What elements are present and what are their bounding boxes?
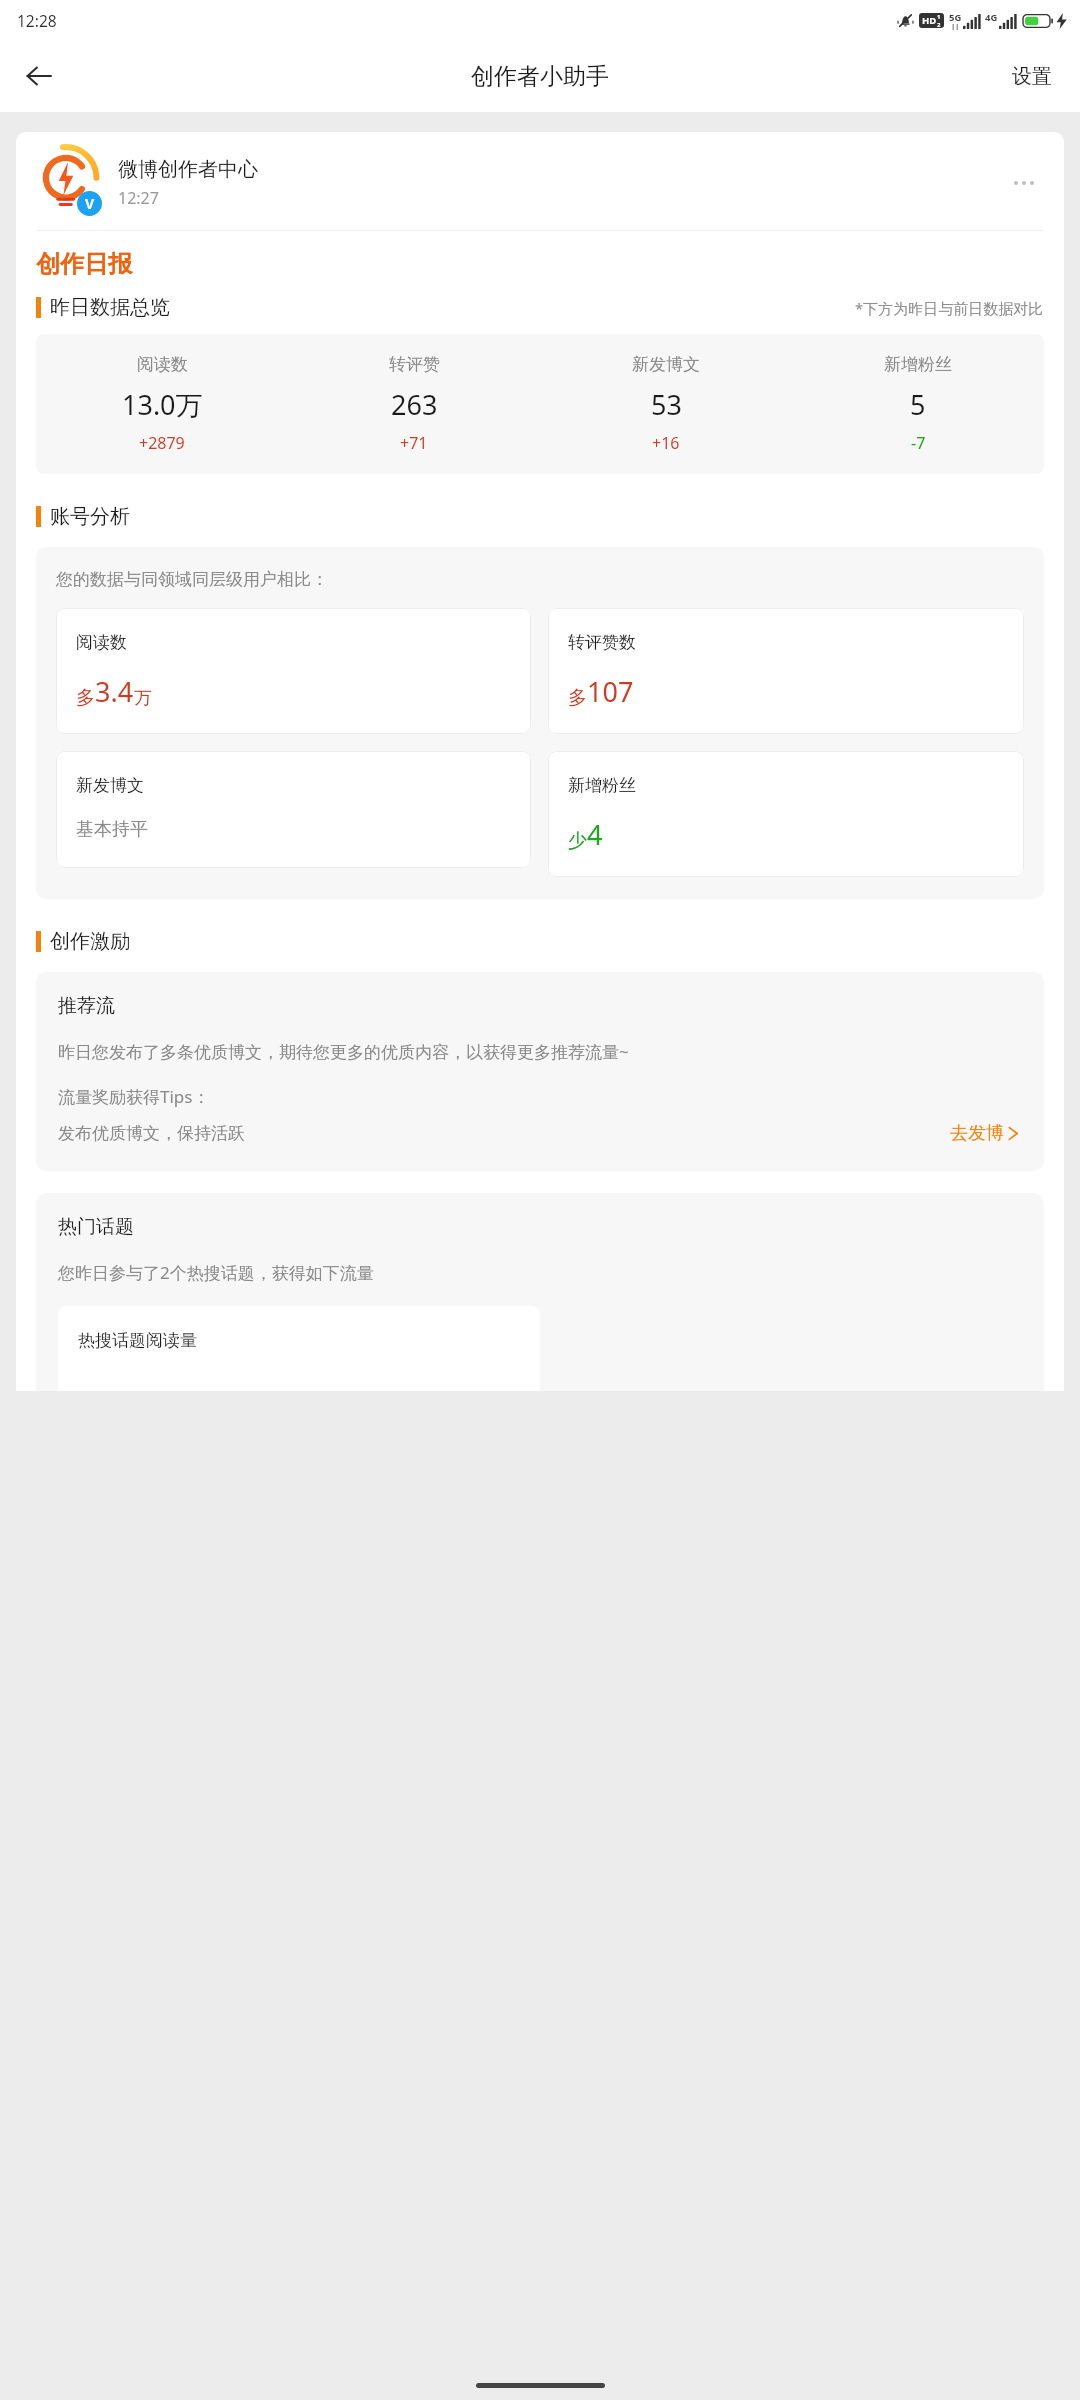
button[interactable]: Back bbox=[10, 47, 68, 105]
staticText: 新发博文 bbox=[76, 775, 144, 796]
staticText: -7 bbox=[911, 432, 926, 454]
staticText: 新增粉丝 bbox=[568, 775, 636, 796]
staticText: 263 bbox=[391, 386, 438, 423]
staticText: 4 bbox=[587, 816, 603, 853]
staticText: 您昨日参与了2个热搜话题，获得如下流量 bbox=[58, 1261, 374, 1284]
staticText: 创作激励 bbox=[50, 929, 130, 954]
staticText: 13.0万 bbox=[122, 386, 203, 423]
button[interactable]: 转评赞数 bbox=[548, 608, 1024, 734]
staticText: 多 bbox=[76, 686, 95, 710]
staticText: 新增粉丝 bbox=[884, 354, 952, 375]
staticText: 热搜话题阅读量 bbox=[78, 1330, 197, 1351]
staticText: 昨日您发布了多条优质博文，期待您更多的优质内容，以获得更多推荐流量~ bbox=[58, 1040, 629, 1063]
staticText: 2 bbox=[937, 21, 941, 28]
staticText: 创作日报 bbox=[36, 249, 132, 279]
staticText: 4G bbox=[985, 11, 998, 24]
staticText: 12:27 bbox=[118, 187, 159, 209]
staticText: 1 bbox=[937, 13, 941, 21]
staticText: 热门话题 bbox=[58, 1215, 134, 1239]
staticText: 微博创作者中心 bbox=[118, 157, 258, 182]
staticText: 53 bbox=[651, 386, 682, 423]
staticText: *下方为昨日与前日数据对比 bbox=[855, 298, 1044, 318]
staticText: 阅读数 bbox=[137, 354, 188, 375]
staticText: 去发博 bbox=[950, 1122, 1004, 1145]
button[interactable]: 阅读数 bbox=[56, 608, 531, 734]
button[interactable]: 新增粉丝 bbox=[548, 751, 1024, 877]
staticText: 阅读数 bbox=[76, 632, 127, 653]
staticText: 您的数据与同领域同层级用户相比： bbox=[56, 569, 328, 590]
staticText: +71 bbox=[400, 432, 428, 454]
staticText: 转评赞 bbox=[389, 354, 440, 375]
staticText: HD bbox=[922, 14, 937, 27]
staticText: 设置 bbox=[1012, 64, 1052, 89]
staticText: 基本持平 bbox=[76, 818, 148, 841]
staticText: 创作者小助手 bbox=[471, 62, 609, 91]
staticText: 万 bbox=[134, 687, 152, 710]
staticText: 转评赞数 bbox=[568, 632, 636, 653]
staticText: 推荐流 bbox=[58, 994, 115, 1018]
staticText: V bbox=[85, 194, 95, 213]
staticText: +2879 bbox=[139, 432, 185, 454]
button[interactable]: 设置 bbox=[1006, 56, 1058, 97]
staticText: 多 bbox=[568, 686, 587, 710]
button[interactable]: 去发博 bbox=[948, 1118, 1022, 1149]
staticText: +16 bbox=[652, 432, 680, 454]
staticText: 昨日数据总览 bbox=[50, 295, 170, 320]
staticText: 流量奖励获得Tips： bbox=[58, 1085, 210, 1108]
staticText: 3.4 bbox=[95, 673, 134, 710]
staticText: 107 bbox=[587, 673, 634, 710]
staticText: 12:28 bbox=[17, 10, 57, 31]
button[interactable]: More options bbox=[1004, 163, 1044, 203]
button[interactable]: 新发博文 bbox=[56, 751, 531, 868]
staticText: 账号分析 bbox=[50, 504, 130, 529]
staticText: 5G bbox=[949, 11, 962, 24]
staticText: 少 bbox=[568, 829, 587, 853]
staticText: 新发博文 bbox=[632, 354, 700, 375]
staticText: 5 bbox=[910, 386, 926, 423]
staticText: 发布优质博文，保持活跃 bbox=[58, 1123, 245, 1144]
